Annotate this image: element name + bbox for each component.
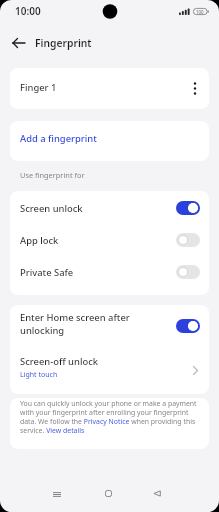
button[interactable] <box>153 490 161 497</box>
staticText: Light touch <box>20 370 58 380</box>
button[interactable]: Private Safe <box>10 256 209 288</box>
staticText: Add a fingerprint <box>20 132 97 145</box>
staticText: Fingerprint <box>35 36 92 50</box>
staticText: Enter Home screen after unlocking <box>20 311 130 337</box>
staticText: Use fingerprint for <box>20 170 85 180</box>
staticText: Screen unlock <box>20 202 83 215</box>
button[interactable]: Enter Home screen after unlocking <box>10 305 209 347</box>
button[interactable] <box>105 490 112 497</box>
button[interactable]: Add a fingerprint <box>10 121 209 161</box>
staticText: 100 <box>196 9 204 15</box>
button[interactable] <box>176 201 200 215</box>
staticText: You can quickly unlock your phone or mak… <box>20 399 197 435</box>
button[interactable]: Screen unlock <box>10 192 209 224</box>
button[interactable] <box>13 38 25 48</box>
staticText: Screen-off unlock <box>20 355 99 368</box>
button[interactable]: Screen-off unlock <box>10 347 209 394</box>
button[interactable] <box>176 265 200 279</box>
button[interactable] <box>176 319 200 333</box>
button[interactable] <box>193 82 197 95</box>
button[interactable]: App lock <box>10 224 209 256</box>
staticText: App lock <box>20 234 59 247</box>
button[interactable] <box>176 233 200 247</box>
button[interactable] <box>53 492 61 497</box>
staticText: Private Safe <box>20 266 74 279</box>
button[interactable]: Finger 1 <box>10 68 209 109</box>
staticText: 10:00 <box>15 4 41 18</box>
staticText: Finger 1 <box>20 81 57 94</box>
